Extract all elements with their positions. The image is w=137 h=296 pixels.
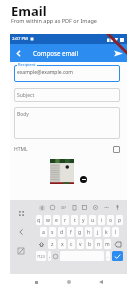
button[interactable]: q xyxy=(36,215,42,225)
button[interactable]: z xyxy=(48,239,56,249)
button[interactable]: i xyxy=(98,215,105,225)
button[interactable]: e xyxy=(53,215,60,225)
staticText: a xyxy=(42,229,45,236)
staticText: c xyxy=(70,241,73,248)
staticText: b xyxy=(88,241,92,248)
button[interactable]: b xyxy=(86,239,93,249)
button[interactable]: Move keyboard xyxy=(16,208,26,218)
staticText: r xyxy=(64,217,67,224)
button[interactable]: v xyxy=(77,239,84,249)
button[interactable]: ?123 xyxy=(36,251,46,261)
button[interactable]: d xyxy=(58,227,65,237)
button[interactable]: f xyxy=(67,227,74,237)
button[interactable]: y xyxy=(80,215,87,225)
button[interactable]: Shift xyxy=(36,239,46,249)
button[interactable]: Emoji xyxy=(53,251,58,261)
staticText: h xyxy=(87,229,91,236)
staticText: x xyxy=(61,241,64,248)
button[interactable]: Handwriting xyxy=(16,246,26,256)
button[interactable]: example@example.com xyxy=(14,65,120,82)
staticText: From within app as PDF or Image xyxy=(11,17,97,24)
staticText: m xyxy=(105,241,110,248)
staticText: o xyxy=(109,217,113,224)
button[interactable]: m xyxy=(104,239,111,249)
staticText: w xyxy=(46,217,50,224)
staticText: g xyxy=(78,229,82,236)
staticText: y xyxy=(82,217,85,224)
staticText: 2:07 PM xyxy=(12,36,28,42)
button[interactable]: Expand toolbar xyxy=(37,203,46,212)
button[interactable]: Enter xyxy=(112,251,123,261)
button[interactable]: k xyxy=(103,227,110,237)
button[interactable]: n xyxy=(95,239,102,249)
staticText: v xyxy=(79,241,82,248)
staticText: t xyxy=(74,217,76,224)
button[interactable]: Stickers xyxy=(48,203,57,212)
staticText: k xyxy=(105,229,108,236)
button[interactable]: Backspace xyxy=(113,239,123,249)
button[interactable]: Back xyxy=(10,45,27,62)
button[interactable]: g xyxy=(76,227,83,237)
button[interactable]: More xyxy=(102,203,111,212)
button[interactable]: Subject xyxy=(14,88,120,102)
button[interactable]: j xyxy=(94,227,101,237)
button[interactable]: r xyxy=(62,215,69,225)
staticText: Email xyxy=(11,2,47,20)
button[interactable]: s xyxy=(49,227,56,237)
staticText: f xyxy=(70,229,72,236)
staticText: e xyxy=(55,217,58,224)
staticText: GIF xyxy=(61,206,67,210)
button[interactable]: u xyxy=(89,215,96,225)
staticText: s xyxy=(51,229,54,236)
button[interactable]: . xyxy=(106,251,110,261)
button[interactable]: c xyxy=(68,239,75,249)
staticText: ?123 xyxy=(37,254,45,259)
staticText: i xyxy=(101,217,103,224)
staticText: p xyxy=(118,217,122,224)
button[interactable]: Settings xyxy=(91,203,100,212)
button[interactable]: HTML xyxy=(113,146,120,153)
staticText: l xyxy=(115,229,117,236)
staticText: j xyxy=(97,229,99,236)
staticText: d xyxy=(60,229,64,236)
button[interactable]: Body xyxy=(14,107,120,139)
button[interactable]: p xyxy=(116,215,123,225)
button[interactable]: t xyxy=(71,215,78,225)
button[interactable]: Clipboard xyxy=(70,203,79,212)
staticText: z xyxy=(51,241,54,248)
staticText: u xyxy=(91,217,95,224)
staticText: Recipient xyxy=(18,62,36,67)
staticText: Body xyxy=(17,111,29,118)
button[interactable]: Remove attachment xyxy=(80,176,87,183)
button[interactable]: x xyxy=(58,239,66,249)
button[interactable]: a xyxy=(40,227,47,237)
staticText: q xyxy=(37,217,41,224)
button[interactable]: Attachment preview xyxy=(50,159,74,184)
button[interactable]: h xyxy=(85,227,92,237)
button[interactable]: Home xyxy=(63,276,75,288)
button[interactable]: GIF xyxy=(59,203,68,212)
button[interactable]: Collapse keyboard xyxy=(16,227,26,237)
staticText: . xyxy=(107,253,109,259)
staticText: n xyxy=(97,241,101,248)
staticText: , xyxy=(49,253,51,259)
button[interactable]: Back xyxy=(95,276,107,288)
button[interactable]: w xyxy=(44,215,51,225)
button[interactable]: , xyxy=(48,251,51,261)
button[interactable]: Recents xyxy=(30,276,42,288)
button[interactable]: Theme xyxy=(80,203,89,212)
button[interactable]: Send xyxy=(110,45,127,62)
button[interactable]: Voice input xyxy=(113,203,122,212)
button[interactable]: l xyxy=(112,227,119,237)
staticText: example@example.com xyxy=(17,69,73,76)
staticText: Compose email xyxy=(33,49,78,57)
staticText: Subject xyxy=(17,92,35,99)
button[interactable]: o xyxy=(107,215,114,225)
staticText: HTML xyxy=(14,146,28,153)
